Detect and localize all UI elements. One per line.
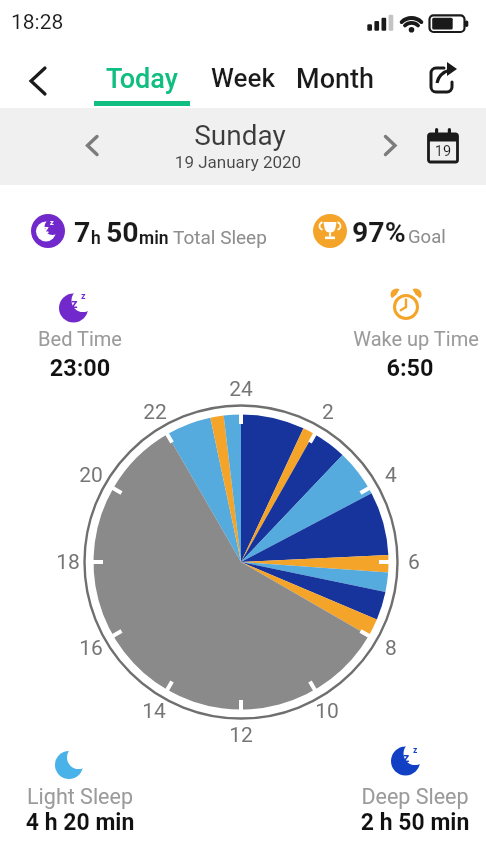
- staticText: 8: [369, 636, 413, 661]
- staticText: 97%: [352, 216, 406, 249]
- staticText: Today: [106, 63, 178, 95]
- staticText: Sunday: [140, 119, 340, 152]
- button[interactable]: [16, 56, 56, 100]
- staticText: z: [43, 223, 49, 236]
- staticText: z: [50, 219, 54, 227]
- button[interactable]: [378, 132, 402, 160]
- staticText: 19: [428, 143, 458, 160]
- staticText: Total Sleep: [173, 226, 267, 248]
- staticText: Bed Time: [20, 327, 140, 350]
- staticText: 2 h 50 min: [345, 809, 485, 836]
- staticText: 6:50: [340, 354, 480, 382]
- staticText: 4: [369, 463, 413, 488]
- staticText: 16: [69, 636, 113, 661]
- staticText: Week: [211, 63, 275, 93]
- button[interactable]: Month: [290, 56, 380, 108]
- staticText: 50: [106, 216, 139, 249]
- staticText: Light Sleep: [10, 784, 150, 809]
- button[interactable]: Today: [94, 56, 190, 108]
- staticText: 20: [69, 463, 113, 488]
- staticText: 22: [133, 400, 177, 425]
- staticText: z: [71, 296, 78, 311]
- button[interactable]: 19: [426, 126, 462, 166]
- button[interactable]: Week: [204, 56, 282, 108]
- staticText: 18:28: [11, 10, 64, 35]
- staticText: 7: [74, 216, 91, 249]
- staticText: 19 January 2020: [138, 152, 338, 172]
- staticText: 24: [219, 377, 263, 402]
- staticText: Wake up Time: [346, 327, 486, 350]
- staticText: 14: [132, 699, 176, 724]
- staticText: Deep Sleep: [345, 784, 485, 809]
- staticText: 4 h 20 min: [10, 809, 150, 836]
- staticText: Month: [296, 63, 375, 95]
- staticText: Goal: [408, 226, 446, 248]
- staticText: 18: [46, 550, 90, 575]
- staticText: min: [139, 228, 169, 249]
- staticText: 10: [305, 699, 349, 724]
- staticText: 6: [392, 550, 436, 575]
- staticText: z: [413, 745, 418, 755]
- staticText: z: [81, 291, 86, 302]
- staticText: z: [403, 750, 410, 765]
- button[interactable]: [80, 132, 104, 160]
- staticText: 12: [219, 723, 263, 748]
- staticText: h: [91, 228, 106, 249]
- staticText: 2: [306, 400, 350, 425]
- button[interactable]: [420, 56, 466, 102]
- staticText: 23:00: [20, 354, 140, 382]
